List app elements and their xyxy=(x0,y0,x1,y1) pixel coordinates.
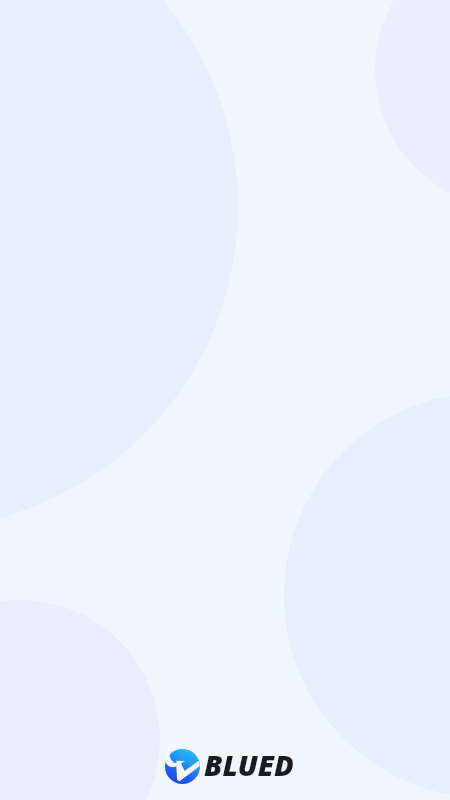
staticText: BLUED xyxy=(204,745,294,784)
button[interactable]: Blued logo xyxy=(165,747,294,786)
other: Blued logo xyxy=(165,749,200,784)
